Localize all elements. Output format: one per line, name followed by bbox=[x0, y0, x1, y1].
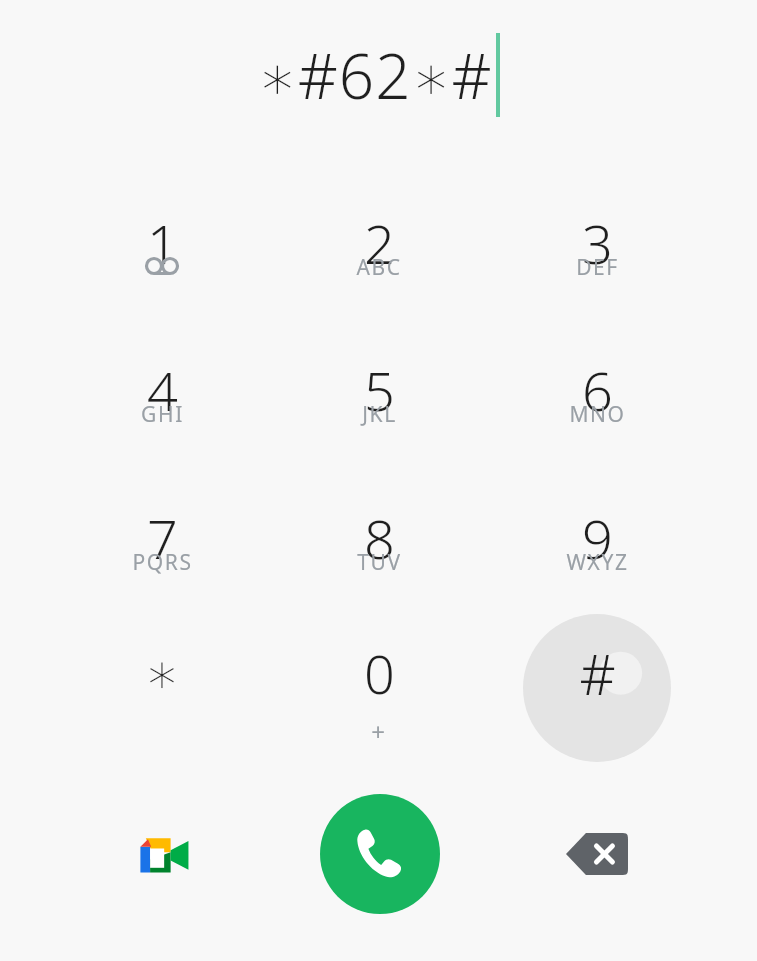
staticText: ∗ bbox=[144, 641, 180, 706]
button[interactable]: # bbox=[523, 599, 671, 747]
button[interactable]: 2 bbox=[305, 169, 453, 317]
staticText: ∗#62∗# bbox=[258, 33, 493, 117]
staticText: 1 bbox=[147, 206, 178, 280]
staticText: 7 bbox=[147, 501, 178, 575]
button[interactable]: Video call with Google Meet bbox=[112, 804, 212, 904]
staticText: 6 bbox=[582, 353, 613, 427]
staticText: # bbox=[579, 635, 616, 711]
button[interactable]: 8 bbox=[305, 464, 453, 612]
staticText: GHI bbox=[141, 400, 184, 429]
staticText: WXYZ bbox=[566, 548, 629, 577]
button[interactable]: 7 bbox=[88, 464, 236, 612]
button[interactable]: Backspace bbox=[547, 804, 647, 904]
staticText: 3 bbox=[582, 206, 613, 280]
button[interactable]: ∗ bbox=[88, 599, 236, 747]
button[interactable]: 0 bbox=[305, 599, 453, 747]
button[interactable]: 9 bbox=[523, 464, 671, 612]
staticText: TUV bbox=[357, 548, 402, 577]
button[interactable]: 1 bbox=[88, 169, 236, 317]
staticText: 9 bbox=[582, 501, 613, 575]
button[interactable]: 6 bbox=[523, 316, 671, 464]
button[interactable]: ∗#62∗# bbox=[0, 0, 757, 150]
button[interactable]: Call bbox=[320, 794, 440, 914]
staticText: DEF bbox=[576, 253, 619, 282]
staticText: MNO bbox=[569, 400, 626, 429]
staticText: 0 bbox=[364, 636, 395, 710]
button[interactable]: 3 bbox=[523, 169, 671, 317]
staticText: 4 bbox=[147, 353, 178, 427]
staticText: JKL bbox=[362, 400, 397, 429]
button[interactable]: 4 bbox=[88, 316, 236, 464]
staticText: 2 bbox=[364, 206, 395, 280]
button[interactable]: 5 bbox=[305, 316, 453, 464]
staticText: 5 bbox=[364, 353, 395, 427]
staticText: PQRS bbox=[132, 548, 193, 577]
staticText: ABC bbox=[356, 253, 402, 282]
staticText: + bbox=[371, 715, 387, 747]
staticText: 8 bbox=[364, 501, 395, 575]
